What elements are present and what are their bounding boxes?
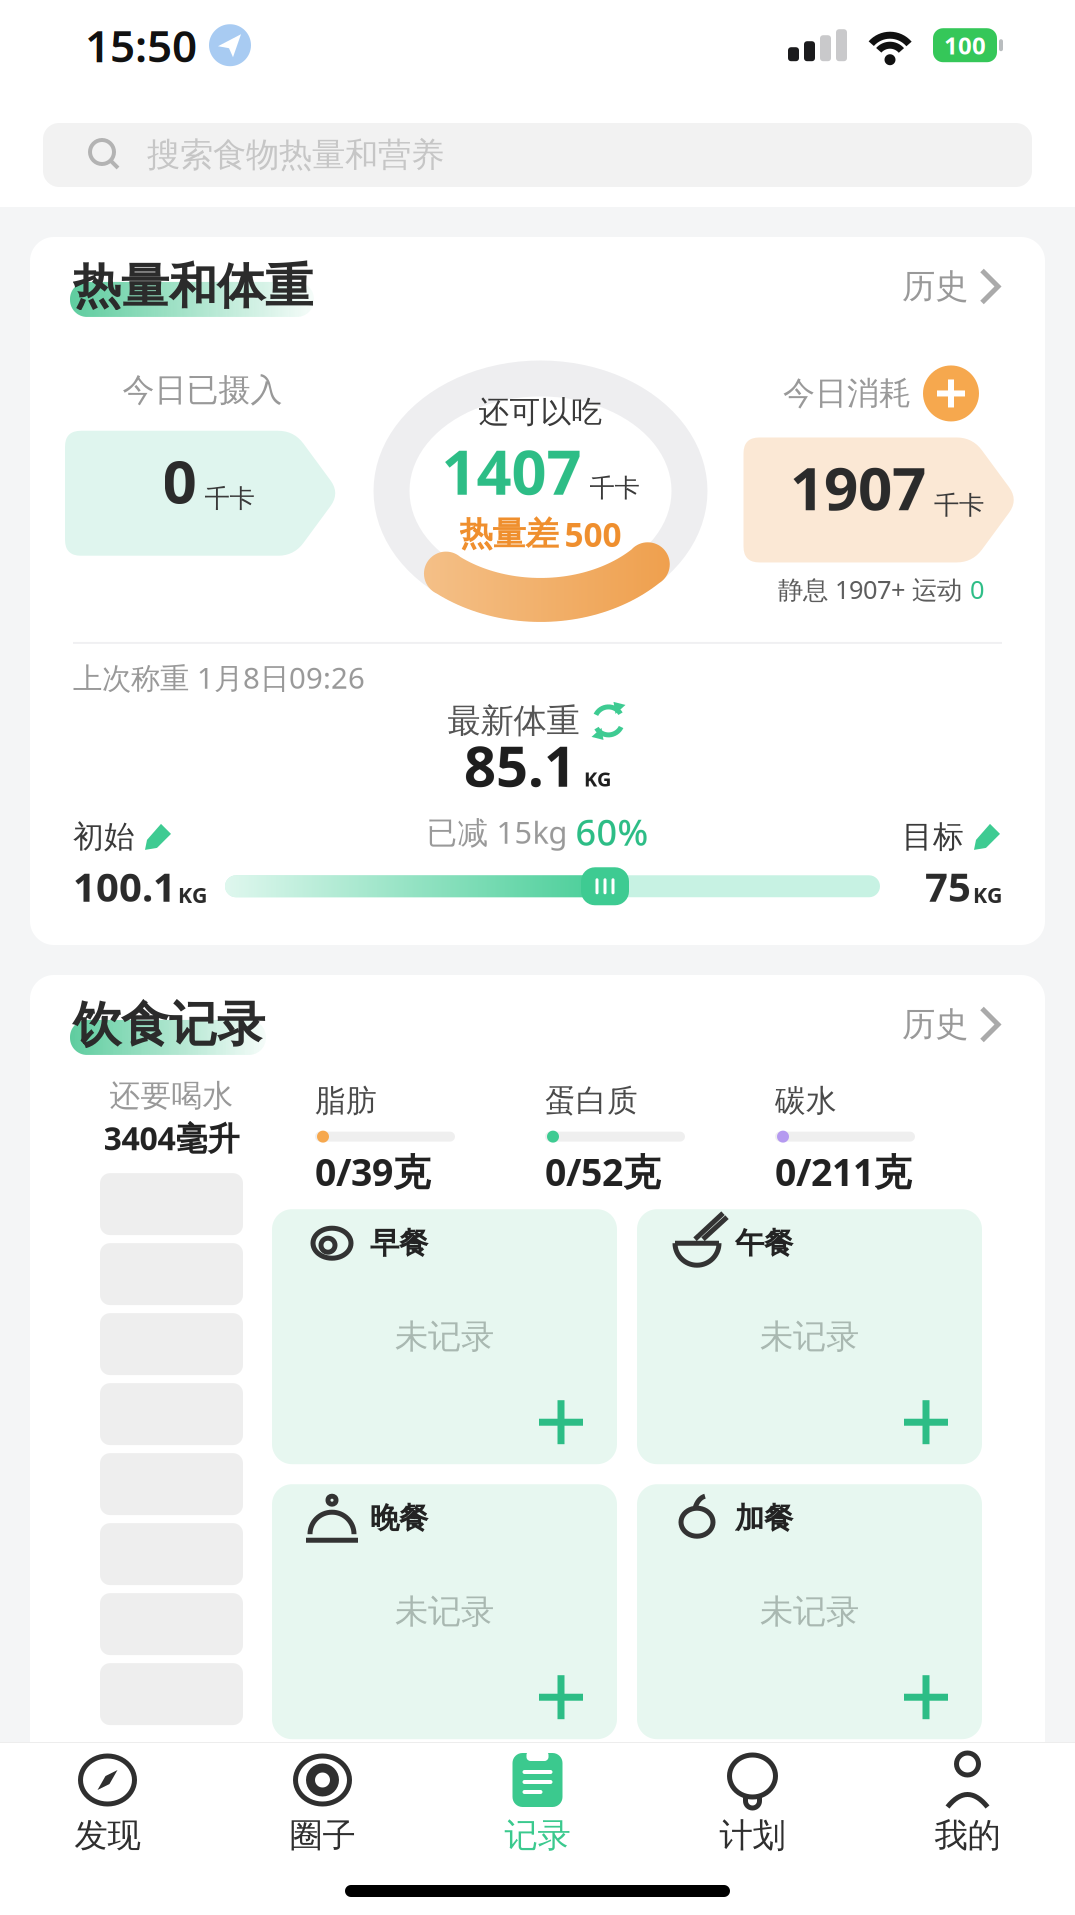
staticText: KG bbox=[584, 765, 611, 792]
staticText: 未记录 bbox=[395, 1316, 494, 1357]
staticText: 千卡 bbox=[589, 473, 639, 504]
staticText: 已减 15kg bbox=[426, 811, 567, 852]
staticText: 计划 bbox=[719, 1815, 785, 1856]
button[interactable]: 加餐 bbox=[637, 1484, 982, 1739]
staticText: 蛋白质 bbox=[545, 1082, 638, 1120]
staticText: 初始 bbox=[73, 818, 135, 856]
staticText: 100 bbox=[944, 29, 986, 61]
button[interactable]: 计划 bbox=[645, 1751, 860, 1856]
staticText: 晚餐 bbox=[370, 1500, 428, 1536]
staticText: 今日消耗 bbox=[783, 374, 911, 413]
button[interactable]: 刷新体重 bbox=[589, 703, 627, 739]
button[interactable]: 记录 bbox=[430, 1751, 645, 1856]
staticText: KG bbox=[973, 880, 1002, 909]
button[interactable]: 搜索食物热量和营养 bbox=[43, 123, 1032, 187]
staticText: 千卡 bbox=[934, 490, 984, 521]
button[interactable]: 我的 bbox=[860, 1751, 1075, 1856]
staticText: 未记录 bbox=[760, 1316, 859, 1357]
button[interactable]: 发现 bbox=[0, 1751, 215, 1856]
button[interactable]: 历史 bbox=[902, 1004, 1002, 1045]
staticText: 历史 bbox=[902, 266, 968, 307]
staticText: 上次称重 1月8日09:26 bbox=[73, 658, 365, 697]
staticText: 今日已摄入 bbox=[122, 370, 282, 410]
staticText: 500 bbox=[564, 512, 621, 556]
staticText: 静息 1907+ 运动 bbox=[778, 572, 970, 606]
staticText: 加餐 bbox=[735, 1500, 793, 1536]
button[interactable]: 编辑初始体重 bbox=[73, 818, 173, 856]
staticText: 还可以吃 bbox=[478, 393, 602, 431]
staticText: 热量差 bbox=[459, 513, 558, 554]
staticText: 碳水 bbox=[775, 1082, 837, 1120]
staticText: 0/52克 bbox=[545, 1147, 660, 1196]
staticText: 午餐 bbox=[735, 1225, 793, 1261]
staticText: 1907 bbox=[790, 447, 926, 527]
staticText: 0/211克 bbox=[775, 1147, 911, 1196]
button[interactable]: 历史 bbox=[902, 266, 1002, 307]
staticText: 未记录 bbox=[395, 1591, 494, 1632]
staticText: 85.1 bbox=[464, 728, 576, 802]
staticText: 0 bbox=[162, 440, 196, 520]
staticText: 早餐 bbox=[370, 1225, 428, 1261]
staticText: 记录 bbox=[504, 1815, 570, 1856]
button[interactable]: 午餐 bbox=[637, 1209, 982, 1464]
staticText: 目标 bbox=[902, 818, 964, 856]
staticText: 60% bbox=[575, 808, 648, 856]
staticText: 圈子 bbox=[289, 1815, 355, 1856]
staticText: 饮食记录 bbox=[73, 995, 265, 1054]
staticText: 脂肪 bbox=[315, 1082, 377, 1120]
staticText: 3404毫升 bbox=[103, 1117, 239, 1159]
staticText: 搜索食物热量和营养 bbox=[147, 134, 444, 175]
staticText: 15:50 bbox=[85, 16, 197, 74]
staticText: 发现 bbox=[74, 1815, 140, 1856]
staticText: 0/39克 bbox=[315, 1147, 430, 1196]
staticText: 最新体重 bbox=[447, 700, 579, 741]
staticText: 历史 bbox=[902, 1004, 968, 1045]
staticText: 热量和体重 bbox=[73, 257, 313, 316]
button[interactable]: 早餐 bbox=[272, 1209, 617, 1464]
staticText: 我的 bbox=[934, 1815, 1000, 1856]
button[interactable]: 添加运动 bbox=[923, 365, 979, 421]
staticText: 还要喝水 bbox=[109, 1077, 233, 1115]
staticText: 100.1 bbox=[73, 860, 176, 913]
button[interactable]: 晚餐 bbox=[272, 1484, 617, 1739]
button[interactable]: 圈子 bbox=[215, 1751, 430, 1856]
staticText: 未记录 bbox=[760, 1591, 859, 1632]
staticText: KG bbox=[178, 880, 207, 909]
staticText: 0 bbox=[970, 572, 984, 606]
staticText: 75 bbox=[925, 860, 971, 913]
button[interactable]: 编辑目标体重 bbox=[902, 818, 1002, 856]
staticText: 1407 bbox=[441, 430, 581, 512]
staticText: 千卡 bbox=[204, 483, 254, 514]
